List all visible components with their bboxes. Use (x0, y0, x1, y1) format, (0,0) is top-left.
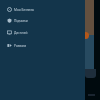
button[interactable]: Розваги (0, 40, 85, 51)
staticText: Підказки (14, 19, 28, 23)
staticText: Дисплей (14, 31, 28, 35)
staticText: Розваги (14, 44, 27, 48)
button[interactable]: Add (82, 32, 89, 39)
staticText: Моя Безпека (14, 8, 34, 12)
button[interactable]: Підказки (0, 15, 85, 26)
button[interactable]: Дисплей (0, 27, 85, 38)
button[interactable]: Моя Безпека (0, 4, 85, 15)
